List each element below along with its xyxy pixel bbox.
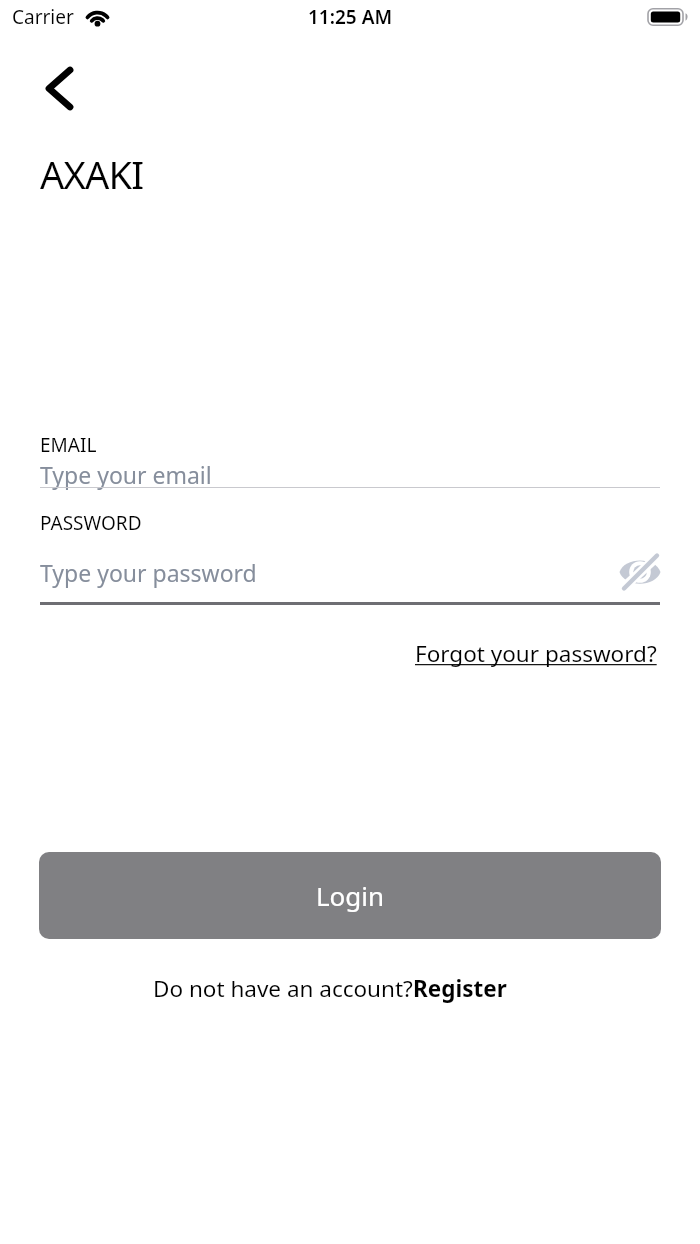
button[interactable]: Forgot your password? bbox=[415, 638, 657, 669]
button[interactable]: Do not have an account? bbox=[153, 973, 507, 1004]
staticText: PASSWORD bbox=[40, 510, 142, 536]
staticText: AXAKI bbox=[40, 148, 144, 200]
staticText: Login bbox=[316, 878, 385, 913]
staticText: Carrier bbox=[12, 4, 74, 30]
staticText: Type your password bbox=[40, 557, 257, 588]
button[interactable]: Login bbox=[39, 852, 661, 939]
staticText: 11:25 AM bbox=[308, 4, 393, 30]
staticText: Type your email bbox=[40, 459, 212, 490]
staticText: Register bbox=[413, 973, 507, 1004]
button[interactable] bbox=[40, 63, 78, 113]
staticText: Do not have an account? bbox=[153, 973, 413, 1004]
staticText: EMAIL bbox=[40, 432, 97, 458]
button[interactable] bbox=[612, 546, 668, 598]
